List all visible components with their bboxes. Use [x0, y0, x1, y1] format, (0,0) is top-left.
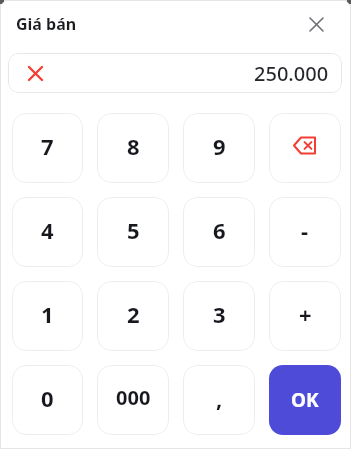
button[interactable] — [25, 63, 45, 83]
staticText: 2 — [127, 299, 140, 329]
button[interactable]: 8 — [97, 113, 169, 183]
button[interactable]: 250.000 — [8, 53, 342, 93]
button[interactable] — [304, 12, 328, 36]
button[interactable]: 000 — [97, 365, 169, 435]
button[interactable]: 9 — [183, 113, 255, 183]
button[interactable]: OK — [269, 365, 341, 435]
staticText: 1 — [41, 299, 54, 329]
button[interactable]: , — [183, 365, 255, 435]
button[interactable]: 0 — [12, 365, 83, 435]
staticText: 250.000 — [254, 60, 329, 87]
staticText: 3 — [213, 299, 226, 329]
staticText: Giá bán — [16, 13, 77, 35]
staticText: 000 — [116, 384, 151, 411]
staticText: , — [216, 383, 223, 413]
staticText: 7 — [41, 131, 54, 161]
staticText: OK — [291, 387, 319, 413]
button[interactable] — [269, 113, 341, 183]
button[interactable]: 6 — [183, 197, 255, 267]
button[interactable]: 2 — [97, 281, 169, 351]
staticText: 9 — [213, 131, 226, 161]
staticText: 5 — [127, 215, 140, 245]
staticText: + — [299, 299, 312, 329]
staticText: 8 — [127, 131, 140, 161]
button[interactable]: 5 — [97, 197, 169, 267]
staticText: 6 — [213, 215, 226, 245]
button[interactable]: - — [269, 197, 341, 267]
button[interactable]: 7 — [12, 113, 83, 183]
staticText: 0 — [41, 383, 54, 413]
button[interactable]: 4 — [12, 197, 83, 267]
button[interactable]: 1 — [12, 281, 83, 351]
button[interactable]: 3 — [183, 281, 255, 351]
staticText: - — [301, 215, 309, 245]
button[interactable]: + — [269, 281, 341, 351]
staticText: 4 — [41, 215, 54, 245]
